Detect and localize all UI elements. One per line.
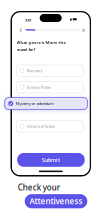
staticText: Submit: [42, 156, 60, 163]
staticText: 9:41: [24, 17, 31, 23]
button[interactable]: Submit: [17, 153, 85, 167]
staticText: Attentiveness: [29, 196, 82, 206]
staticText: mood for?: [16, 47, 35, 52]
button[interactable]: Mystery or adventure: [5, 98, 87, 109]
button[interactable]: Romance: [16, 65, 83, 76]
staticText: Check your: [18, 182, 60, 193]
button[interactable]: Science fiction: [16, 81, 83, 93]
staticText: Romance: [27, 68, 43, 73]
staticText: Science fiction: [27, 85, 51, 90]
staticText: What genre is Mia in the: [16, 40, 65, 45]
button[interactable]: Close: [81, 28, 86, 33]
button[interactable]: Historical fiction: [16, 120, 83, 132]
staticText: Mystery or adventure: [16, 101, 54, 106]
button[interactable]: Back: [18, 27, 24, 33]
staticText: ▮▮: [69, 18, 71, 21]
staticText: Historical fiction: [27, 124, 55, 129]
